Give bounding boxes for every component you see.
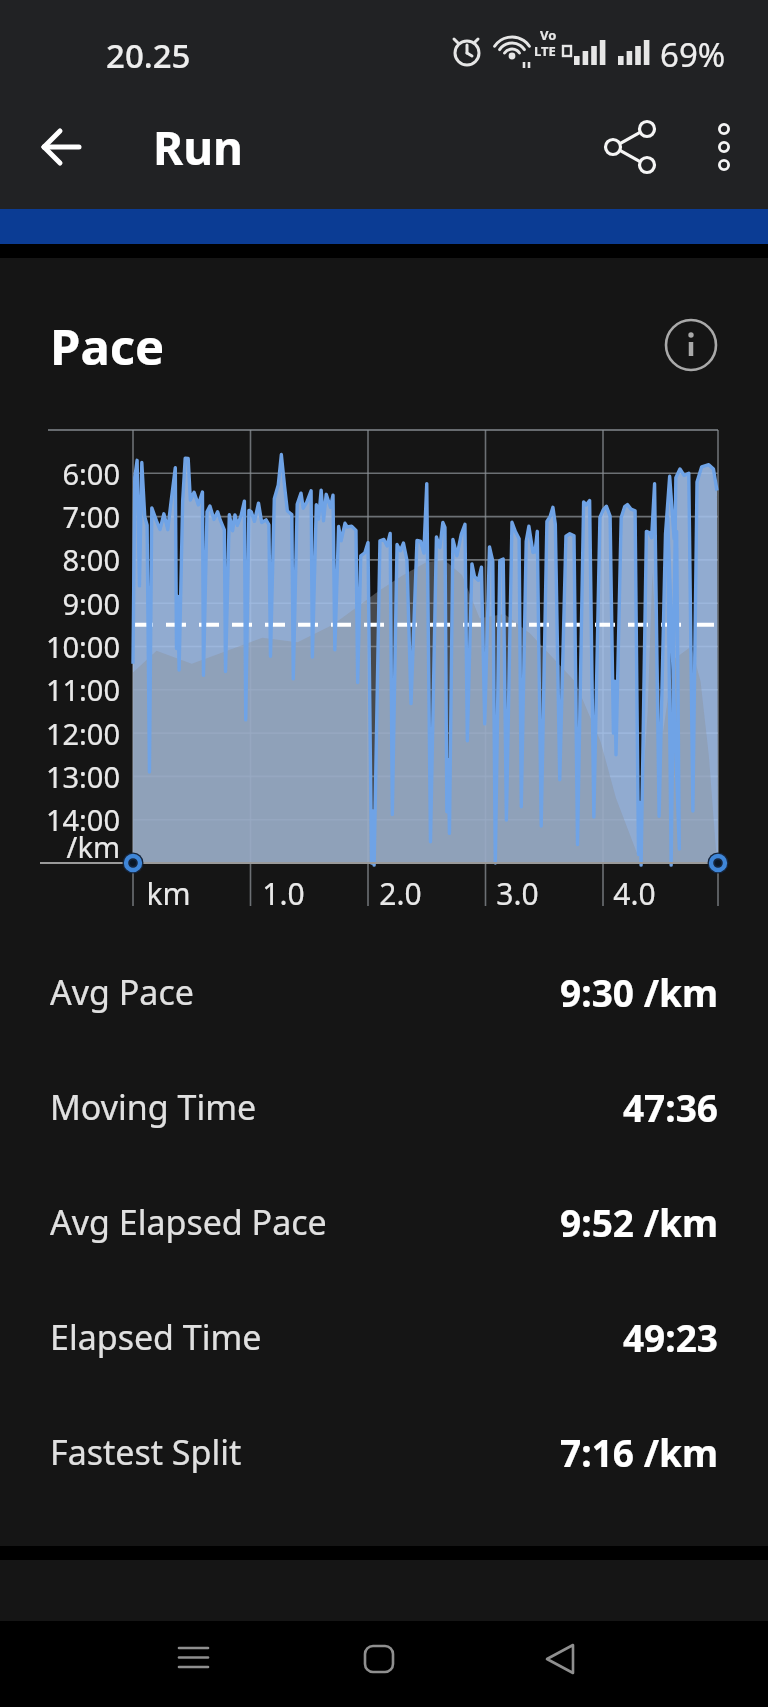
staticText: 3.0 <box>496 873 539 913</box>
staticText: Elapsed Time <box>50 1314 262 1360</box>
staticText: 7:16 /km <box>560 1427 718 1477</box>
button[interactable] <box>345 1625 413 1693</box>
button[interactable] <box>160 1625 228 1693</box>
staticText: Run <box>153 116 243 179</box>
staticText: Pace <box>50 313 165 380</box>
button[interactable] <box>700 112 748 182</box>
staticText: Avg Elapsed Pace <box>50 1199 327 1245</box>
staticText: km <box>146 873 191 913</box>
staticText: 2.0 <box>379 873 422 913</box>
staticText: 13:00 <box>45 757 120 796</box>
staticText: Avg Pace <box>50 969 194 1015</box>
staticText: 8:00 <box>62 540 120 579</box>
staticText: 6:00 <box>62 454 120 493</box>
staticText: 9:00 <box>62 584 120 623</box>
staticText: 9:52 /km <box>560 1197 718 1247</box>
staticText: 47:36 <box>622 1082 718 1132</box>
staticText: 12:00 <box>45 714 120 753</box>
staticText: 7:00 <box>62 497 120 536</box>
staticText: LTE <box>534 42 556 60</box>
staticText: Vo <box>540 26 557 44</box>
button[interactable] <box>663 317 719 373</box>
button[interactable] <box>32 118 90 176</box>
staticText: 20.25 <box>106 33 191 73</box>
button[interactable] <box>526 1625 594 1693</box>
staticText: 69% <box>660 32 726 72</box>
staticText: /km <box>66 827 120 866</box>
staticText: 11:00 <box>45 670 120 709</box>
button[interactable] <box>594 118 658 176</box>
staticText: Moving Time <box>50 1084 257 1130</box>
staticText: 1.0 <box>262 873 305 913</box>
staticText: 49:23 <box>622 1312 718 1362</box>
staticText: 9:30 /km <box>560 967 718 1017</box>
staticText: 10:00 <box>45 627 120 666</box>
staticText: Fastest Split <box>50 1429 242 1475</box>
staticText: 14:00 <box>45 800 120 839</box>
staticText: 4.0 <box>613 873 656 913</box>
